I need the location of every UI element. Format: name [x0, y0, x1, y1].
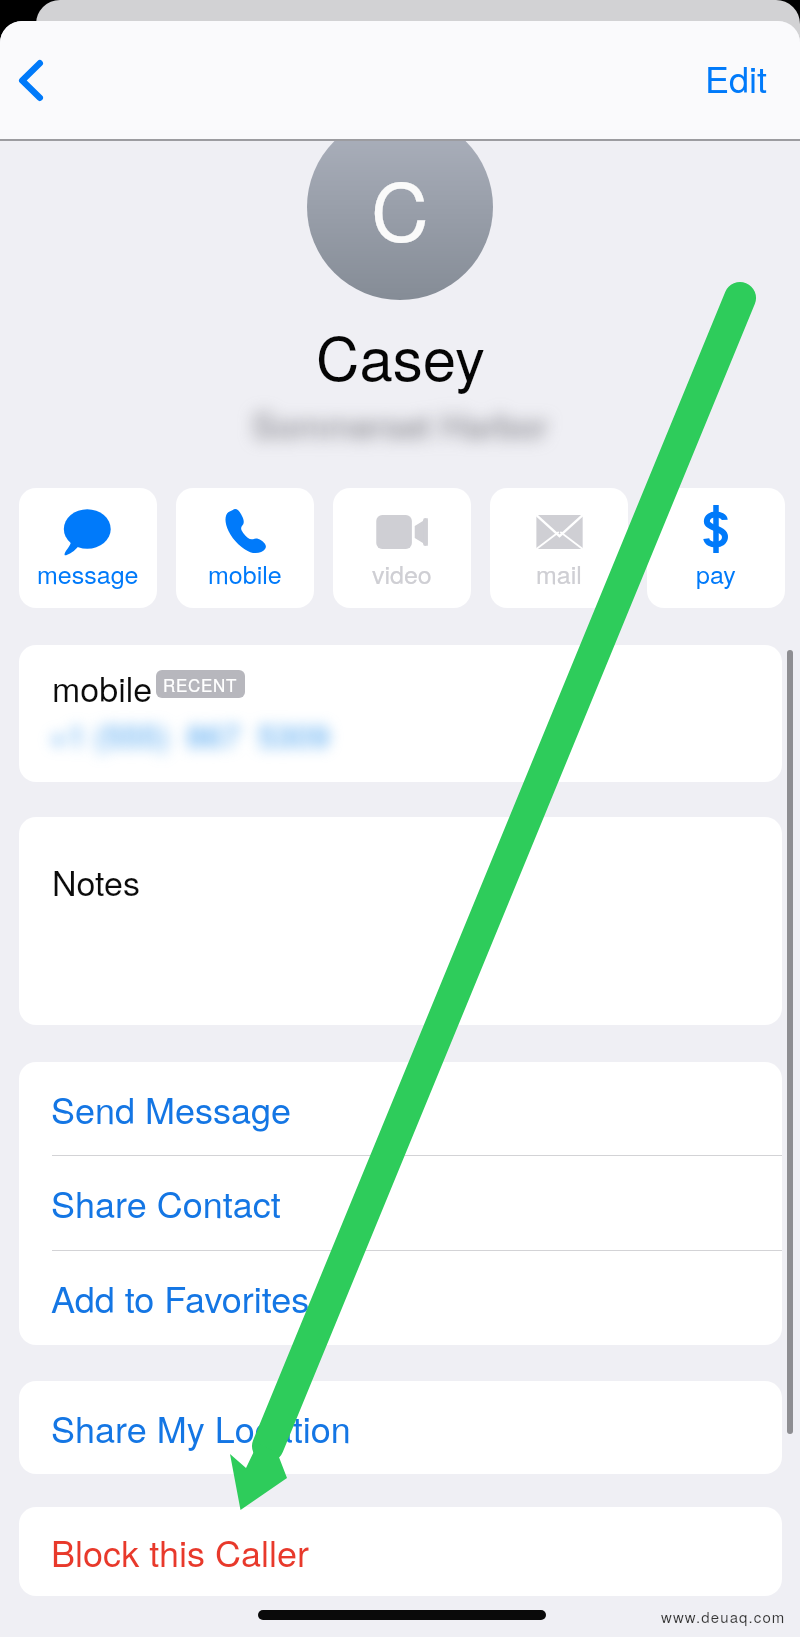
button[interactable]: pay [647, 488, 785, 608]
button[interactable]: Send Message [19, 1062, 782, 1155]
button[interactable]: Add to Favorites [19, 1251, 782, 1344]
staticText: pay [696, 555, 736, 591]
staticText: mobile [52, 663, 153, 712]
button[interactable]: mail [490, 488, 628, 608]
staticText: mail [536, 555, 582, 591]
staticText: Block this Caller [51, 1526, 310, 1578]
button[interactable]: Edit [686, 43, 786, 113]
staticText: +1 (555) 867 5309 [49, 711, 330, 757]
staticText: Share Contact [51, 1177, 281, 1229]
button[interactable]: Back [0, 49, 62, 111]
staticText: Edit [705, 52, 768, 104]
staticText: video [372, 555, 432, 591]
staticText: Notes [52, 857, 140, 906]
staticText: C [371, 150, 429, 265]
button[interactable]: Share Contact [19, 1156, 782, 1249]
button[interactable]: message [19, 488, 157, 608]
staticText: Send Message [51, 1083, 292, 1135]
staticText: Share My Location [51, 1402, 351, 1454]
staticText: mobile [208, 555, 282, 591]
staticText: www.deuaq.com [661, 1606, 786, 1627]
staticText: message [37, 555, 139, 591]
staticText: Sommerset Harbor [252, 399, 548, 449]
button[interactable]: Block this Caller [19, 1507, 782, 1596]
staticText: Casey [316, 312, 485, 398]
button[interactable]: Share My Location [19, 1381, 782, 1474]
staticText: RECENT [163, 672, 238, 696]
button[interactable]: video [333, 488, 471, 608]
button[interactable]: mobile [176, 488, 314, 608]
staticText: Add to Favorites [51, 1272, 310, 1324]
